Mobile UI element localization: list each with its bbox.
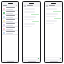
button[interactable]: [31, 14, 39, 15]
button[interactable]: [2, 19, 18, 22]
button[interactable]: Back: [23, 4, 40, 7]
button[interactable]: Search: [2, 4, 18, 7]
button[interactable]: Send: [23, 57, 40, 60]
button[interactable]: Send: [45, 57, 62, 60]
button[interactable]: [32, 21, 39, 22]
button[interactable]: [2, 27, 18, 30]
button[interactable]: [53, 11, 61, 12]
button[interactable]: Back: [45, 4, 62, 7]
button[interactable]: [2, 11, 18, 14]
button[interactable]: [2, 7, 18, 10]
button[interactable]: [2, 31, 18, 34]
button[interactable]: [2, 23, 18, 26]
button[interactable]: [2, 15, 18, 18]
button[interactable]: [54, 18, 61, 19]
